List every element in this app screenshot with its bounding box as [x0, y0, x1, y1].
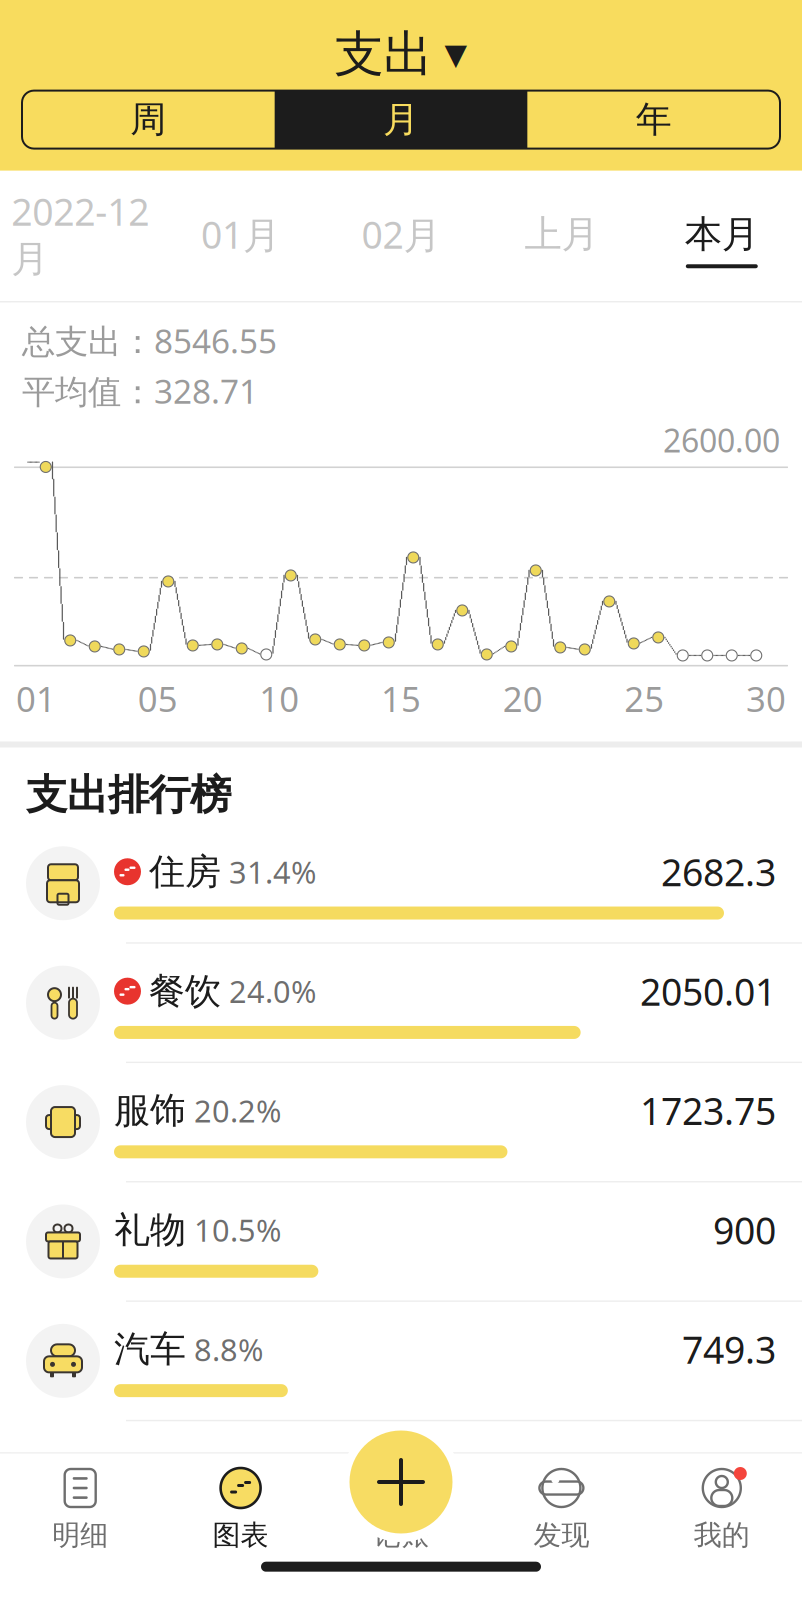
staticText: 礼物: [114, 1208, 186, 1252]
staticText: 我的: [694, 1518, 750, 1552]
button[interactable]: 礼物: [0, 1182, 802, 1302]
staticText: 31.4%: [229, 851, 316, 892]
staticText: 900: [713, 1205, 776, 1255]
staticText: ▼: [444, 38, 467, 71]
staticText: 1.4%: [194, 1448, 263, 1489]
staticText: 2682.3: [661, 847, 776, 897]
button[interactable]: 月: [275, 91, 527, 149]
button[interactable]: 我的: [642, 1455, 802, 1552]
staticText: 支出: [334, 24, 432, 85]
staticText: 年: [636, 97, 672, 142]
staticText: 上月: [524, 211, 598, 257]
button[interactable]: 本月: [642, 203, 802, 276]
staticText: 749.3: [682, 1325, 776, 1374]
staticText: 30: [746, 675, 786, 721]
staticText: 明细: [52, 1518, 108, 1552]
staticText: 平均值：328.71: [22, 369, 258, 413]
button[interactable]: 支出: [334, 0, 467, 91]
staticText: 本月: [685, 211, 759, 257]
staticText: 住房: [149, 850, 221, 894]
staticText: 餐饮: [149, 969, 221, 1013]
button[interactable]: 汽车: [0, 1302, 802, 1421]
staticText: 05: [138, 675, 178, 721]
staticText: 总支出：8546.55: [22, 318, 277, 363]
button[interactable]: 图表: [160, 1455, 321, 1552]
staticText: 服饰: [114, 1088, 186, 1133]
staticText: 10.5%: [194, 1210, 281, 1250]
button[interactable]: 明细: [0, 1455, 160, 1552]
staticText: 117.52: [661, 1444, 776, 1494]
staticText: 10: [259, 675, 299, 721]
button[interactable]: 上月: [481, 203, 642, 276]
staticText: 2022-12月: [11, 187, 149, 282]
staticText: 周: [130, 97, 166, 142]
staticText: 24.0%: [229, 971, 316, 1011]
button[interactable]: 发现: [481, 1455, 642, 1552]
button[interactable]: 记账: [341, 1422, 461, 1542]
button[interactable]: 住房: [0, 824, 802, 944]
staticText: 记账: [373, 1518, 429, 1552]
staticText: 1723.75: [640, 1086, 776, 1135]
button[interactable]: 日用: [0, 1421, 802, 1517]
staticText: 2600.00: [663, 419, 780, 461]
button[interactable]: 02月: [321, 201, 481, 278]
staticText: 图表: [213, 1518, 269, 1552]
button[interactable]: 01月: [160, 201, 321, 278]
staticText: 汽车: [114, 1327, 186, 1371]
button[interactable]: 服饰: [0, 1063, 802, 1182]
staticText: 2050.01: [640, 966, 776, 1016]
button[interactable]: 餐饮: [0, 944, 802, 1063]
staticText: 02月: [361, 209, 440, 259]
button[interactable]: 2022-12月: [0, 179, 160, 301]
staticText: 25: [624, 675, 664, 721]
staticText: 发现: [533, 1518, 589, 1552]
staticText: 15: [381, 675, 421, 721]
staticText: 20.2%: [194, 1090, 281, 1131]
staticText: 支出排行榜: [26, 769, 231, 820]
staticText: 01月: [201, 209, 280, 259]
staticText: 01: [16, 675, 56, 721]
button[interactable]: 周: [22, 91, 275, 149]
staticText: 8.8%: [194, 1329, 263, 1370]
staticText: 月: [383, 97, 419, 142]
button[interactable]: 年: [527, 91, 780, 149]
staticText: 20: [503, 675, 543, 721]
